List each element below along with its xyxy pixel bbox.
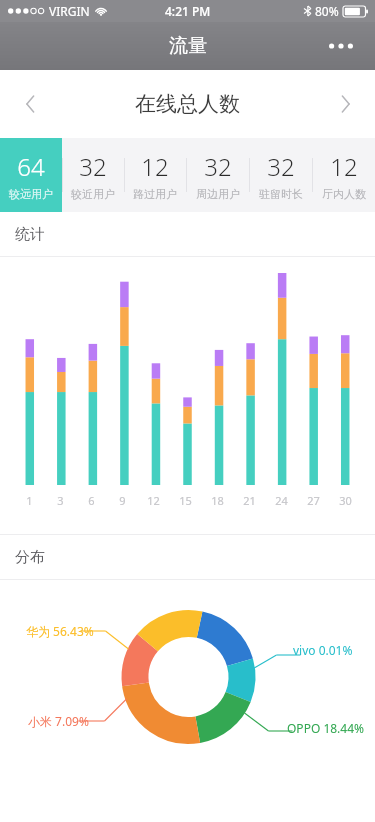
- staticText: 在线总人数: [135, 91, 240, 117]
- staticText: 小米 7.09%: [28, 713, 89, 729]
- staticText: 4:21 PM: [165, 3, 211, 19]
- staticText: 厅内人数: [322, 187, 366, 201]
- staticText: 较近用户: [71, 187, 115, 201]
- button[interactable]: 12: [124, 138, 186, 212]
- button[interactable]: 64: [0, 138, 62, 212]
- staticText: 21: [243, 493, 256, 508]
- staticText: 12: [141, 150, 169, 183]
- button[interactable]: Previous: [8, 82, 52, 126]
- button[interactable]: 32: [62, 138, 124, 212]
- staticText: 15: [179, 493, 192, 508]
- staticText: 80%: [315, 3, 339, 19]
- staticText: 1: [26, 493, 33, 508]
- staticText: 32: [267, 150, 295, 183]
- staticText: 6: [88, 493, 95, 508]
- staticText: 18: [211, 493, 224, 508]
- staticText: OPPO 18.44%: [287, 720, 365, 736]
- button[interactable]: 32: [186, 138, 249, 212]
- staticText: 64: [17, 150, 45, 183]
- staticText: 27: [307, 493, 320, 508]
- staticText: 9: [119, 493, 126, 508]
- staticText: 路过用户: [133, 187, 177, 201]
- button[interactable]: Next: [323, 82, 367, 126]
- button[interactable]: 32: [249, 138, 312, 212]
- staticText: 流量: [169, 34, 207, 58]
- staticText: 30: [339, 493, 352, 508]
- button[interactable]: 12: [312, 138, 375, 212]
- staticText: 12: [330, 150, 358, 183]
- staticText: VIRGIN: [49, 3, 90, 19]
- staticText: 驻留时长: [259, 187, 303, 201]
- staticText: 32: [79, 150, 107, 183]
- staticText: 分布: [15, 548, 45, 567]
- staticText: 较远用户: [9, 187, 53, 201]
- staticText: vivo 0.01%: [293, 642, 353, 658]
- staticText: 12: [147, 493, 160, 508]
- staticText: 24: [275, 493, 288, 508]
- staticText: 32: [204, 150, 232, 183]
- staticText: 周边用户: [196, 187, 240, 201]
- staticText: 华为 56.43%: [26, 623, 94, 639]
- staticText: 3: [57, 493, 64, 508]
- staticText: 统计: [15, 225, 45, 244]
- button[interactable]: More options: [319, 24, 363, 68]
